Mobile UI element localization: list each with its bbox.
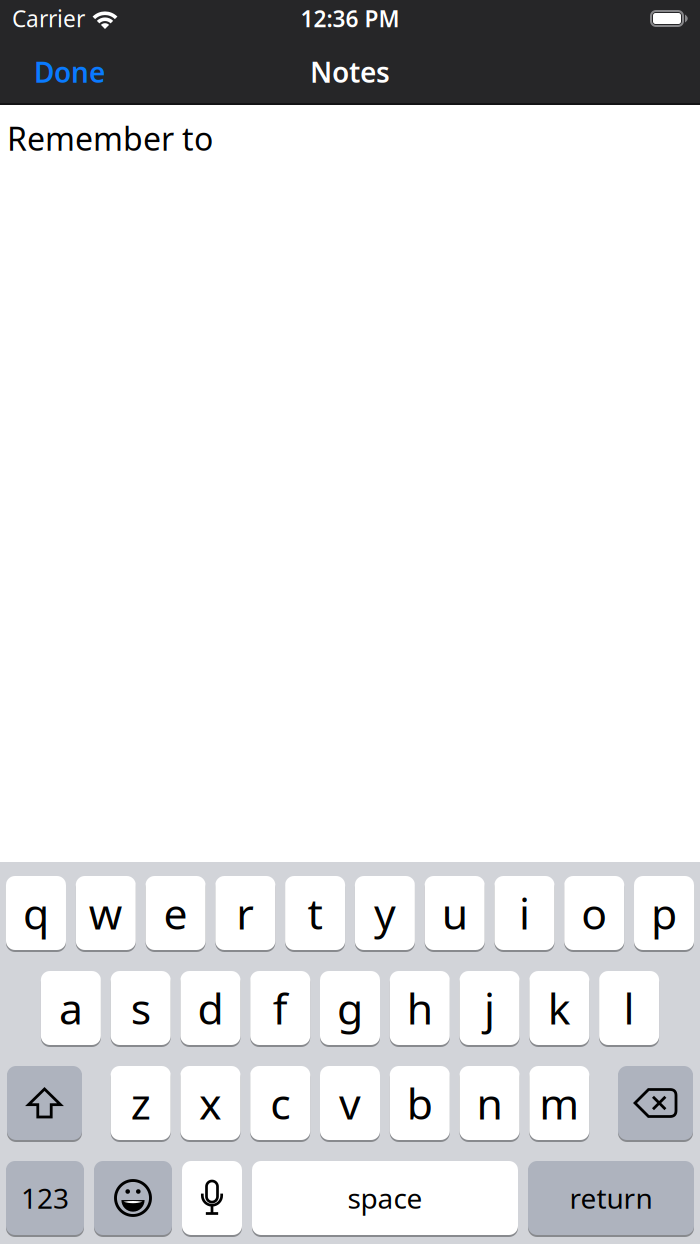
button[interactable]: p: [634, 876, 694, 950]
button[interactable]: t: [285, 876, 345, 950]
staticText: p: [651, 885, 677, 941]
staticText: g: [337, 980, 363, 1036]
button[interactable]: k: [529, 971, 589, 1045]
staticText: f: [273, 980, 288, 1036]
staticText: space: [347, 1179, 422, 1217]
staticText: y: [374, 885, 396, 941]
button[interactable]: q: [6, 876, 66, 950]
staticText: i: [519, 885, 530, 941]
staticText: a: [59, 980, 83, 1036]
button[interactable]: e: [146, 876, 206, 950]
staticText: s: [131, 980, 151, 1036]
staticText: l: [624, 980, 635, 1036]
staticText: b: [407, 1075, 433, 1131]
staticText: w: [89, 885, 123, 941]
staticText: h: [407, 980, 433, 1036]
button[interactable]: Done: [34, 51, 105, 89]
staticText: Done: [34, 53, 105, 91]
staticText: r: [236, 885, 254, 941]
button[interactable]: Shift: [7, 1066, 82, 1140]
button[interactable]: f: [250, 971, 310, 1045]
staticText: Notes: [310, 53, 390, 91]
button[interactable]: space: [252, 1161, 518, 1235]
button[interactable]: l: [599, 971, 659, 1045]
staticText: o: [581, 885, 607, 941]
staticText: 12:36 PM: [300, 3, 399, 33]
button[interactable]: a: [41, 971, 101, 1045]
staticText: n: [477, 1075, 503, 1131]
staticText: u: [442, 885, 468, 941]
button[interactable]: b: [390, 1066, 450, 1140]
button[interactable]: m: [529, 1066, 589, 1140]
button[interactable]: w: [76, 876, 136, 950]
staticText: q: [23, 885, 49, 941]
button[interactable]: y: [355, 876, 415, 950]
staticText: 123: [21, 1179, 69, 1217]
staticText: t: [308, 885, 323, 941]
button[interactable]: g: [320, 971, 380, 1045]
button[interactable]: j: [460, 971, 520, 1045]
staticText: v: [339, 1075, 361, 1131]
staticText: x: [199, 1075, 222, 1131]
staticText: Remember to: [7, 117, 213, 159]
staticText: j: [484, 980, 495, 1036]
button[interactable]: 123: [6, 1161, 84, 1235]
button[interactable]: s: [111, 971, 171, 1045]
button[interactable]: Delete: [618, 1066, 693, 1140]
staticText: z: [131, 1075, 151, 1131]
button[interactable]: d: [180, 971, 240, 1045]
button[interactable]: i: [494, 876, 554, 950]
button[interactable]: u: [425, 876, 485, 950]
button[interactable]: z: [111, 1066, 171, 1140]
staticText: d: [197, 980, 223, 1036]
staticText: return: [569, 1179, 652, 1217]
button[interactable]: r: [215, 876, 275, 950]
staticText: c: [270, 1075, 290, 1131]
staticText: m: [539, 1075, 579, 1131]
button[interactable]: h: [390, 971, 450, 1045]
button[interactable]: o: [564, 876, 624, 950]
button[interactable]: return: [528, 1161, 694, 1235]
button[interactable]: c: [250, 1066, 310, 1140]
button[interactable]: x: [180, 1066, 240, 1140]
staticText: Carrier: [12, 3, 85, 33]
button[interactable]: n: [460, 1066, 520, 1140]
staticText: k: [548, 980, 571, 1036]
staticText: e: [164, 885, 188, 941]
button[interactable]: Dictate: [182, 1161, 242, 1235]
button[interactable]: v: [320, 1066, 380, 1140]
button[interactable]: Emoji: [94, 1161, 172, 1235]
